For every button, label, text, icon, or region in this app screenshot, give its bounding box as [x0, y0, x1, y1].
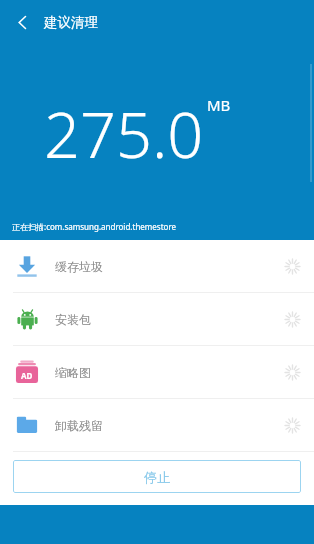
staticText: 缓存垃圾 — [55, 259, 103, 274]
staticText: 缩略图 — [55, 365, 91, 380]
button[interactable]: 缓存垃圾 — [0, 240, 314, 292]
button[interactable]: 安装包 — [0, 293, 314, 345]
staticText: 安装包 — [55, 312, 91, 327]
staticText: AD — [21, 370, 33, 381]
button[interactable]: 卸载残留 — [0, 399, 314, 451]
button[interactable]: 停止 — [13, 460, 301, 493]
staticText: 停止 — [144, 469, 170, 485]
button[interactable]: AD — [0, 346, 314, 398]
staticText: MB — [207, 95, 231, 115]
staticText: 建议清理 — [44, 14, 98, 31]
button[interactable]: Back — [0, 0, 44, 44]
staticText: 正在扫描:com.samsung.android.themestore — [12, 221, 177, 232]
staticText: 卸载残留 — [55, 418, 103, 433]
staticText: 275.0 — [44, 91, 204, 177]
